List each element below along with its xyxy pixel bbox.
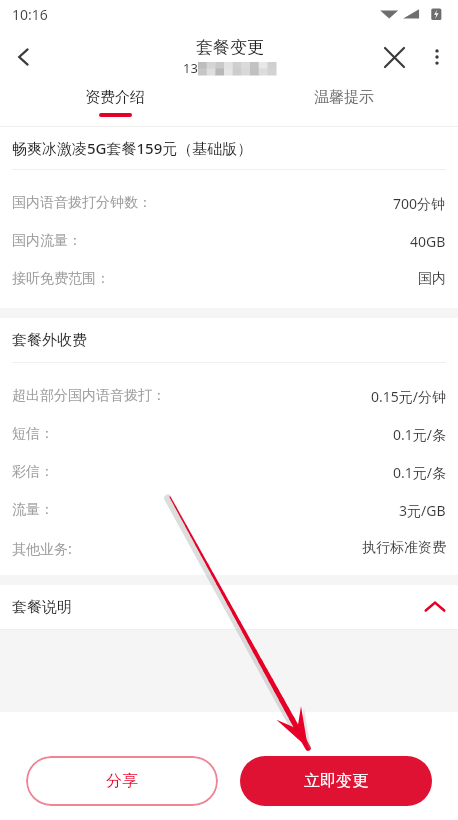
button[interactable]: More options — [416, 36, 458, 78]
button[interactable]: 资费介绍 — [0, 86, 229, 126]
staticText: 10:16 — [12, 5, 48, 24]
staticText: 超出部分国内语音拨打： — [12, 387, 166, 405]
staticText: 国内流量： — [12, 232, 82, 250]
staticText: 畅爽冰激凌5G套餐159元（基础版） — [12, 138, 253, 158]
button[interactable]: 套餐说明 — [0, 585, 458, 629]
button[interactable]: 立即变更 — [240, 756, 432, 806]
staticText: 0.1元/条 — [393, 463, 446, 482]
button[interactable]: 分享 — [26, 756, 218, 806]
staticText: 接听免费范围： — [12, 270, 110, 288]
staticText: 短信： — [12, 425, 54, 443]
button[interactable]: 温馨提示 — [229, 86, 458, 126]
staticText: 国内语音拨打分钟数： — [12, 194, 152, 212]
staticText: 3元/GB — [399, 501, 446, 520]
staticText: 0.15元/分钟 — [371, 387, 446, 406]
button[interactable]: Close — [372, 35, 416, 79]
staticText: 13 — [183, 59, 198, 77]
staticText: 立即变更 — [304, 771, 368, 791]
staticText: 流量： — [12, 501, 54, 519]
staticText: 执行标准资费 — [362, 539, 446, 557]
staticText: 0.1元/条 — [393, 425, 446, 444]
staticText: 温馨提示 — [314, 88, 374, 107]
staticText: 套餐说明 — [12, 598, 72, 617]
staticText: 国内 — [418, 270, 446, 288]
staticText: 套餐外收费 — [12, 331, 87, 350]
staticText: 其他业务: — [12, 539, 72, 558]
staticText: 资费介绍 — [85, 88, 145, 107]
staticText: 彩信： — [12, 463, 54, 481]
button[interactable]: Back — [0, 33, 48, 81]
staticText: 40GB — [410, 232, 446, 251]
staticText: 分享 — [106, 771, 138, 791]
staticText: 700分钟 — [393, 194, 446, 213]
staticText: 套餐变更 — [196, 37, 264, 58]
